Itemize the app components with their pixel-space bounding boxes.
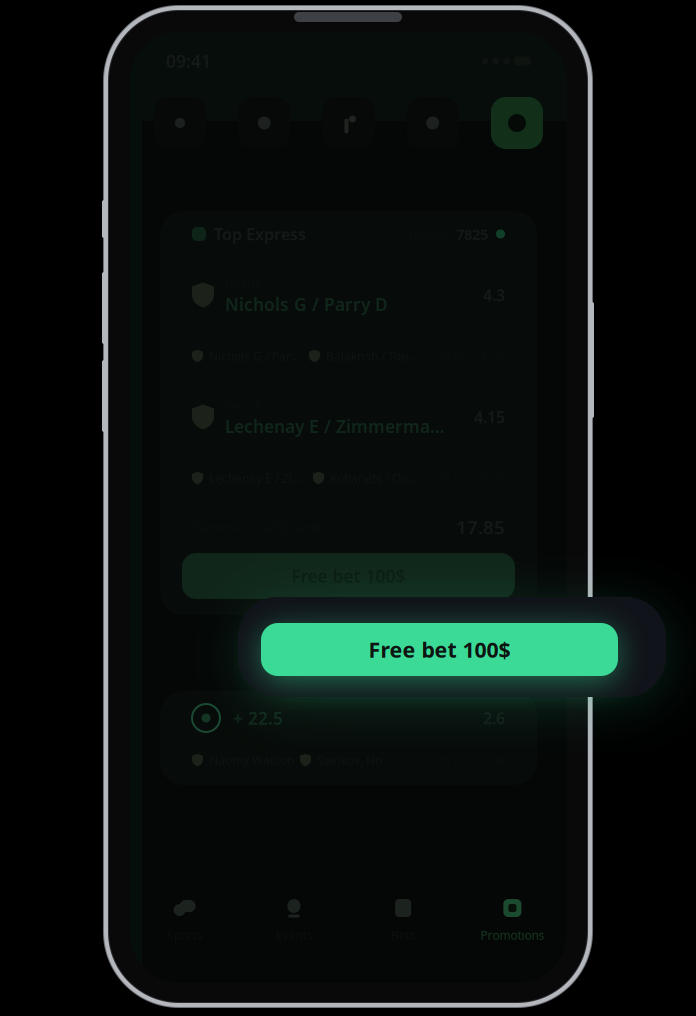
staticText: 7825	[456, 224, 488, 244]
staticText: Free bet 100$	[368, 635, 510, 664]
staticText: Promotions	[480, 927, 544, 943]
button[interactable]: Free bet 100$	[160, 553, 537, 615]
button[interactable]: Sport category	[407, 97, 459, 149]
staticText: Top Express	[214, 223, 306, 245]
staticText: Lechenay E / Zimmermann K	[225, 415, 444, 438]
button[interactable]: Sport category	[238, 97, 290, 149]
staticText: 4.15	[474, 406, 505, 428]
staticText: Free bet 100$	[291, 564, 405, 587]
button[interactable]: Free bet 100$	[261, 623, 618, 676]
staticText: 17.85	[456, 515, 505, 539]
staticText: 09:41	[166, 49, 211, 72]
button[interactable]: Promotions	[491, 97, 543, 149]
button[interactable]: Promotions	[458, 891, 567, 949]
button[interactable]: Events	[239, 891, 348, 949]
staticText: 2.6	[483, 707, 505, 729]
button[interactable]: Sports	[130, 891, 239, 949]
button[interactable]: Sport category	[322, 97, 374, 149]
staticText: 4.3	[483, 284, 505, 306]
button[interactable]: Sport category	[154, 97, 206, 149]
staticText: Nichols G / Parry D	[225, 293, 388, 316]
staticText: + 22.5	[233, 706, 283, 729]
button[interactable]: Bets	[348, 891, 458, 949]
